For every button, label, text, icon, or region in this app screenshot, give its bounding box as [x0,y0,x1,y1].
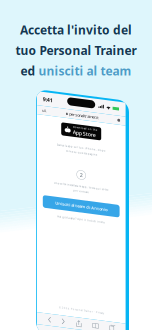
staticText: Unisciti al team di Antonio [55,198,107,203]
staticText: Download on the [73,120,98,124]
staticText: Hai già la app? Apri il link di invito [57,212,105,215]
staticText: Accetta l'invito del [20,22,132,38]
staticText: personaltrainer.it [69,107,98,112]
staticText: 9:41 [43,94,53,102]
staticText: ed [20,63,35,79]
staticText: per entrare [73,184,89,187]
staticText: torna su questa pagina [66,145,97,148]
staticText: Scarica la app sul tuo iPhone, dopo [57,140,106,143]
staticText: unisciti al team [38,63,131,79]
button[interactable]: Unisciti al team di Antonio [43,194,120,207]
staticText: 2 [80,165,83,173]
staticText: Una volta installata la app, tocca qui s… [54,179,109,182]
staticText: App Store [73,124,96,131]
staticText: ᴀA [42,107,47,112]
staticText: tuo Personal Trainer [15,42,136,58]
